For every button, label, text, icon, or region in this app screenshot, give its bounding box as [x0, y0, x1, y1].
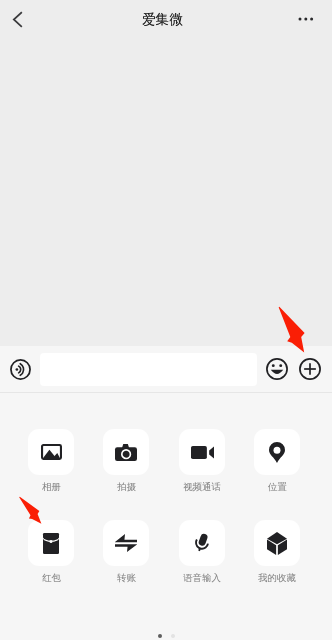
button[interactable]: Voice input — [6, 355, 34, 383]
button[interactable]: More functions — [296, 355, 324, 383]
staticText: 拍摄 — [117, 481, 136, 493]
staticText: 转账 — [117, 572, 136, 584]
staticText: 爱集微 — [142, 11, 183, 28]
button[interactable]: 相册 — [28, 429, 74, 475]
button[interactable]: Emoji — [263, 355, 291, 383]
button[interactable]: Back — [0, 0, 34, 38]
button[interactable]: 转账 — [103, 520, 149, 566]
button[interactable]: 位置 — [254, 429, 300, 475]
staticText: 位置 — [268, 481, 287, 493]
button[interactable]: 我的收藏 — [254, 520, 300, 566]
staticText: 我的收藏 — [258, 572, 296, 584]
staticText: 语音输入 — [183, 572, 221, 584]
button[interactable]: 红包 — [28, 520, 74, 566]
button[interactable]: 拍摄 — [103, 429, 149, 475]
button[interactable]: More options — [296, 0, 332, 38]
staticText: 相册 — [42, 481, 61, 493]
staticText: 视频通话 — [183, 481, 221, 493]
button[interactable]: 语音输入 — [179, 520, 225, 566]
staticText: 红包 — [42, 572, 61, 584]
staticText: 爱集微 — [142, 11, 183, 28]
button[interactable]: 视频通话 — [179, 429, 225, 475]
